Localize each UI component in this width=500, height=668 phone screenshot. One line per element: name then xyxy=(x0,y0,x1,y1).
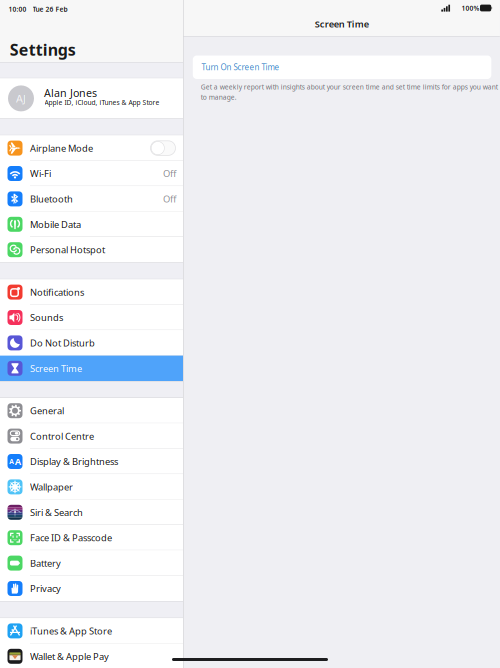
button[interactable]: Sounds xyxy=(0,305,183,330)
staticText: Screen Time xyxy=(315,18,369,30)
staticText: Siri & Search xyxy=(30,506,83,518)
button[interactable]: Airplane Mode xyxy=(0,135,183,161)
staticText: Display & Brightness xyxy=(30,455,118,468)
button[interactable]: A xyxy=(0,449,183,474)
button[interactable]: Control Centre xyxy=(0,423,183,449)
staticText: Off xyxy=(163,193,176,205)
staticText: Screen Time xyxy=(30,362,82,374)
staticText: iTunes & App Store xyxy=(30,625,112,637)
staticText: Wi-Fi xyxy=(30,167,51,180)
staticText: Bluetooth xyxy=(30,193,73,205)
staticText: A xyxy=(15,455,21,468)
button[interactable]: Bluetooth xyxy=(0,186,183,212)
staticText: Get a weekly report with insights about … xyxy=(201,82,498,91)
staticText: AJ xyxy=(16,91,26,105)
button[interactable]: Siri & Search xyxy=(0,500,183,525)
staticText: Sounds xyxy=(30,311,63,324)
staticText: Airplane Mode xyxy=(30,142,93,154)
staticText: to manage. xyxy=(201,93,237,102)
button[interactable]: Screen Time xyxy=(0,356,183,381)
staticText: 100% xyxy=(462,4,480,13)
button[interactable]: Face ID & Passcode xyxy=(0,525,183,550)
staticText: General xyxy=(30,404,64,417)
button[interactable]: AJ xyxy=(0,78,183,118)
button[interactable]: Do Not Disturb xyxy=(0,330,183,356)
staticText: Do Not Disturb xyxy=(30,337,95,349)
button[interactable]: Turn On Screen Time xyxy=(193,55,491,79)
staticText: A xyxy=(9,457,14,466)
staticText: Notifications xyxy=(30,286,84,298)
staticText: 10:00 xyxy=(9,5,27,14)
button[interactable]: Privacy xyxy=(0,576,183,601)
button[interactable]: Notifications xyxy=(0,279,183,305)
button[interactable]: Battery xyxy=(0,550,183,576)
staticText: Settings xyxy=(10,39,76,60)
button[interactable]: Wallet & Apple Pay xyxy=(0,644,183,668)
button[interactable]: Mobile Data xyxy=(0,212,183,237)
button[interactable]: iTunes & App Store xyxy=(0,618,183,644)
staticText: Wallet & Apple Pay xyxy=(30,650,109,662)
staticText: Wallpaper xyxy=(30,481,73,493)
button[interactable]: General xyxy=(0,398,183,423)
staticText: Mobile Data xyxy=(30,218,81,230)
button[interactable]: Wallpaper xyxy=(0,474,183,500)
button[interactable]: Wi-Fi xyxy=(0,161,183,186)
staticText: Control Centre xyxy=(30,430,94,442)
staticText: Face ID & Passcode xyxy=(30,531,112,544)
staticText: Off xyxy=(163,167,176,180)
button[interactable]: Personal Hotspot xyxy=(0,237,183,262)
staticText: Battery xyxy=(30,557,61,569)
staticText: Personal Hotspot xyxy=(30,243,105,256)
staticText: Alan Jones xyxy=(44,86,97,100)
staticText: Tue 26 Feb xyxy=(33,5,68,14)
staticText: Privacy xyxy=(30,582,61,595)
staticText: Apple ID, iCloud, iTunes & App Store xyxy=(44,98,159,107)
staticText: Turn On Screen Time xyxy=(201,62,279,72)
